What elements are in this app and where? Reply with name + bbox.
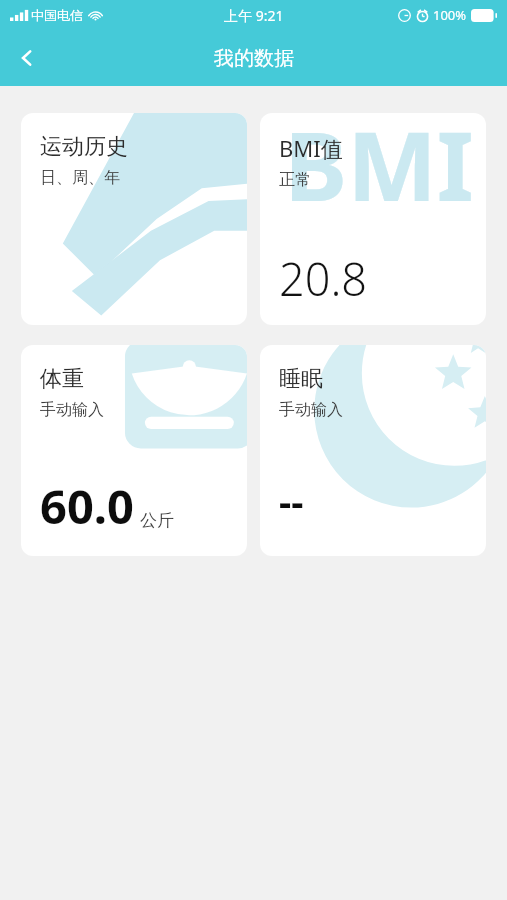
staticText: 上午 9:21 — [224, 6, 284, 25]
button[interactable]: 睡眠 — [260, 345, 486, 556]
staticText: 手动输入 — [40, 400, 104, 420]
staticText: 我的数据 — [214, 46, 294, 71]
staticText: 运动历史 — [40, 133, 128, 161]
staticText: BMI值 — [279, 133, 343, 163]
staticText: 100% — [433, 6, 467, 24]
staticText: 体重 — [40, 365, 84, 393]
staticText: -- — [279, 475, 304, 527]
button[interactable]: BMI — [260, 113, 486, 325]
staticText: 60.0 — [40, 474, 134, 538]
staticText: 日、周、年 — [40, 168, 120, 188]
staticText: 中国电信 — [31, 7, 83, 23]
staticText: 手动输入 — [279, 400, 343, 420]
staticText: 20.8 — [279, 248, 368, 309]
button[interactable]: Back — [0, 30, 54, 86]
staticText: 正常 — [279, 170, 311, 190]
button[interactable]: 运动历史 — [21, 113, 247, 325]
staticText: 睡眠 — [279, 365, 323, 393]
button[interactable]: 体重 — [21, 345, 247, 556]
staticText: 公斤 — [140, 510, 174, 531]
staticText: BMI — [284, 113, 474, 228]
